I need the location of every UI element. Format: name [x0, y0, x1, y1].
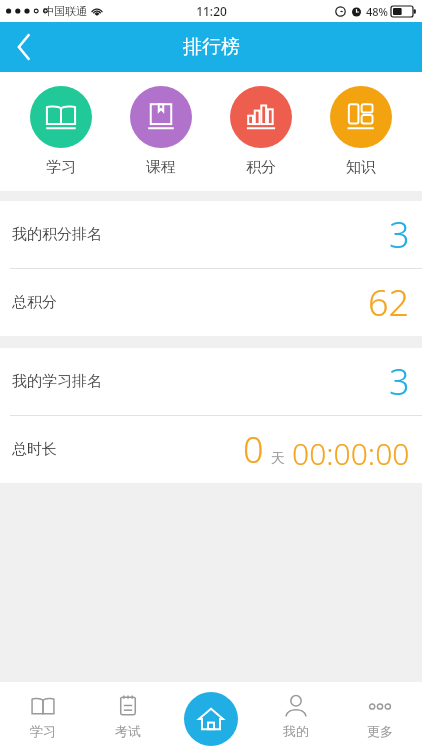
- button[interactable]: 学习: [0, 682, 85, 750]
- button[interactable]: 考试: [85, 682, 170, 750]
- staticText: 考试: [115, 723, 141, 739]
- staticText: 知识: [346, 158, 376, 177]
- staticText: 11:20: [196, 3, 227, 19]
- staticText: 学习: [46, 158, 76, 177]
- button[interactable]: 学习: [22, 86, 100, 177]
- staticText: 排行榜: [183, 35, 240, 59]
- button[interactable]: 我的积分排名: [0, 201, 422, 268]
- button[interactable]: Home: [184, 692, 238, 746]
- staticText: 积分: [246, 158, 276, 177]
- staticText: 3: [389, 210, 410, 259]
- staticText: 天: [271, 450, 285, 468]
- button[interactable]: 课程: [122, 86, 200, 177]
- staticText: 48%: [366, 4, 388, 19]
- button[interactable]: 我的: [254, 682, 338, 750]
- staticText: 62: [368, 278, 410, 327]
- button[interactable]: 积分: [222, 86, 300, 177]
- staticText: 更多: [367, 723, 393, 739]
- button[interactable]: 总时长: [0, 416, 422, 483]
- staticText: 00:00:00: [292, 433, 410, 474]
- button[interactable]: 知识: [322, 86, 400, 177]
- button[interactable]: 总积分: [0, 269, 422, 336]
- button[interactable]: Back: [0, 23, 48, 71]
- staticText: 学习: [30, 723, 56, 739]
- staticText: 我的学习排名: [12, 372, 102, 391]
- button[interactable]: 更多: [338, 682, 422, 750]
- staticText: 我的: [283, 723, 309, 739]
- staticText: 总时长: [12, 440, 57, 459]
- staticText: 0: [243, 425, 264, 474]
- staticText: 总积分: [12, 293, 57, 312]
- staticText: 中国联通: [43, 4, 87, 18]
- staticText: 3: [389, 357, 410, 406]
- staticText: 我的积分排名: [12, 225, 102, 244]
- staticText: 课程: [146, 158, 176, 177]
- button[interactable]: 我的学习排名: [0, 348, 422, 415]
